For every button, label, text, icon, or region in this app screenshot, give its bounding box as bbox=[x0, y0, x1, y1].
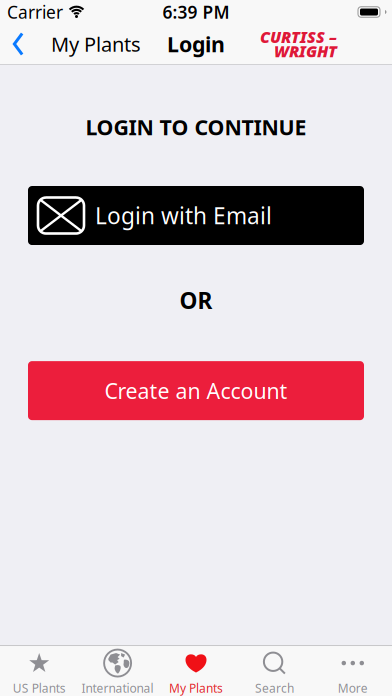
staticText: WRIGHT bbox=[274, 40, 337, 62]
button[interactable]: Login with Email bbox=[28, 186, 364, 245]
staticText: My Plants bbox=[51, 31, 141, 57]
staticText: US Plants bbox=[13, 680, 66, 696]
staticText: LOGIN TO CONTINUE bbox=[85, 113, 306, 141]
button[interactable]: Search bbox=[235, 646, 314, 696]
staticText: My Plants bbox=[169, 680, 223, 696]
staticText: Login with Email bbox=[95, 200, 272, 231]
staticText: More bbox=[338, 680, 368, 696]
staticText: CURTISS – bbox=[260, 26, 337, 47]
button[interactable]: Back bbox=[0, 31, 141, 57]
button[interactable]: International bbox=[78, 646, 157, 696]
button[interactable]: US Plants bbox=[0, 646, 78, 696]
staticText: Search bbox=[255, 680, 294, 696]
staticText: OR bbox=[179, 285, 212, 315]
staticText: International bbox=[82, 680, 154, 696]
button[interactable]: Create an Account bbox=[28, 361, 364, 420]
staticText: Login bbox=[167, 30, 225, 58]
staticText: Create an Account bbox=[104, 376, 287, 405]
staticText: Carrier bbox=[7, 0, 63, 23]
button[interactable]: My Plants bbox=[157, 646, 235, 696]
staticText: 6:39 PM bbox=[162, 0, 229, 23]
button[interactable]: More bbox=[314, 646, 392, 696]
